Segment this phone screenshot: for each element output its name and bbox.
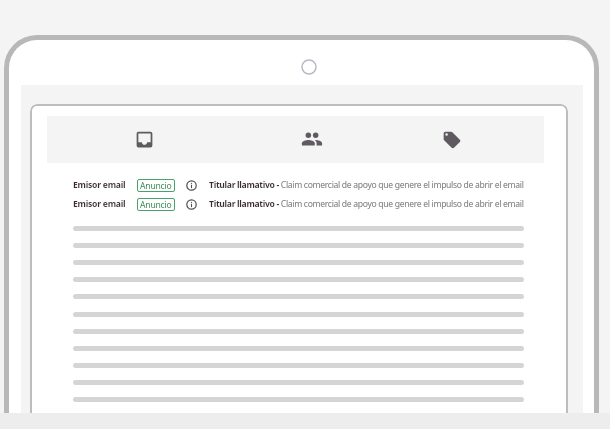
button[interactable]: Principal	[47, 116, 228, 163]
button[interactable]: Promociones	[382, 116, 544, 163]
staticText: Anuncio	[140, 199, 172, 211]
staticText: Titular llamativo - Claim comercial de a…	[209, 179, 524, 191]
button[interactable]: Social	[228, 116, 382, 163]
staticText: Titular llamativo - Claim comercial de a…	[209, 198, 524, 210]
staticText: Emisor email	[73, 179, 126, 191]
staticText: Emisor email	[73, 198, 126, 210]
button[interactable]: Emisor email	[36, 193, 562, 212]
button[interactable]: Emisor email	[36, 174, 562, 193]
staticText: Anuncio	[140, 180, 172, 192]
